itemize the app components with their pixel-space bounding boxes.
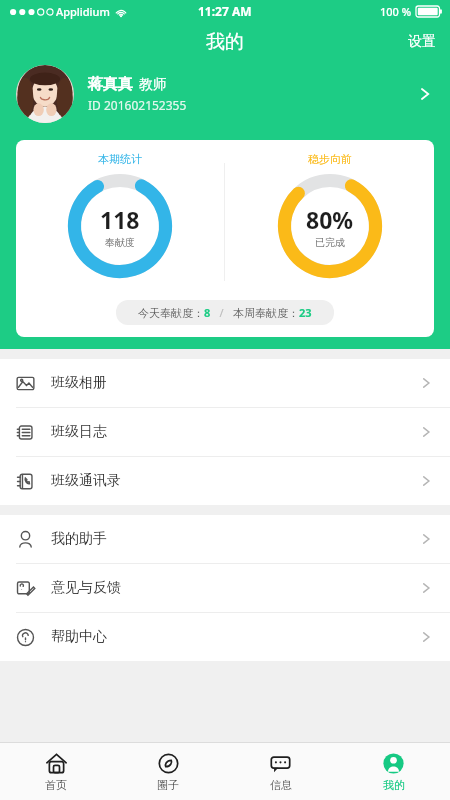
button[interactable]: 班级相册 xyxy=(0,359,450,407)
staticText: 118 xyxy=(100,204,140,235)
button[interactable]: 蒋真真 xyxy=(0,62,450,126)
staticText: 23 xyxy=(299,305,312,320)
staticText: Applidium xyxy=(56,4,110,19)
staticText: 8 xyxy=(204,305,211,320)
staticText: 圈子 xyxy=(157,778,179,792)
button[interactable]: 设置 xyxy=(394,25,450,59)
staticText: 蒋真真 xyxy=(88,75,133,94)
staticText: 班级日志 xyxy=(51,423,107,441)
staticText: 班级相册 xyxy=(51,374,107,392)
staticText: 我的 xyxy=(206,30,244,54)
button[interactable]: 首页 xyxy=(0,746,112,798)
staticText: 教师 xyxy=(139,76,167,94)
staticText: 我的 xyxy=(383,778,405,792)
staticText: 100 % xyxy=(380,4,412,19)
staticText: 今天奉献度： xyxy=(138,306,204,320)
staticText: 设置 xyxy=(408,33,436,51)
staticText: 帮助中心 xyxy=(51,628,107,646)
staticText: / xyxy=(211,305,233,320)
staticText: 本周奉献度： xyxy=(233,306,299,320)
button[interactable]: 帮助中心 xyxy=(0,613,450,661)
button[interactable]: 我的助手 xyxy=(0,515,450,563)
staticText: 本期统计 xyxy=(98,152,142,166)
staticText: 意见与反馈 xyxy=(51,579,121,597)
button[interactable]: 班级日志 xyxy=(0,408,450,456)
staticText: 我的助手 xyxy=(51,530,107,548)
staticText: 11:27 AM xyxy=(198,3,252,19)
staticText: 首页 xyxy=(45,778,67,792)
button[interactable]: 信息 xyxy=(224,746,337,798)
staticText: 信息 xyxy=(270,778,292,792)
button[interactable]: 我的 xyxy=(337,746,450,798)
staticText: 80% xyxy=(306,204,354,235)
staticText: 已完成 xyxy=(315,236,345,249)
other: 个人资料 xyxy=(416,85,434,103)
button[interactable]: 班级通讯录 xyxy=(0,457,450,505)
staticText: ID 201602152355 xyxy=(88,97,187,113)
button[interactable]: 圈子 xyxy=(112,746,224,798)
staticText: 班级通讯录 xyxy=(51,472,121,490)
button[interactable]: 意见与反馈 xyxy=(0,564,450,612)
staticText: 奉献度 xyxy=(105,236,135,249)
staticText: 稳步向前 xyxy=(308,152,352,166)
